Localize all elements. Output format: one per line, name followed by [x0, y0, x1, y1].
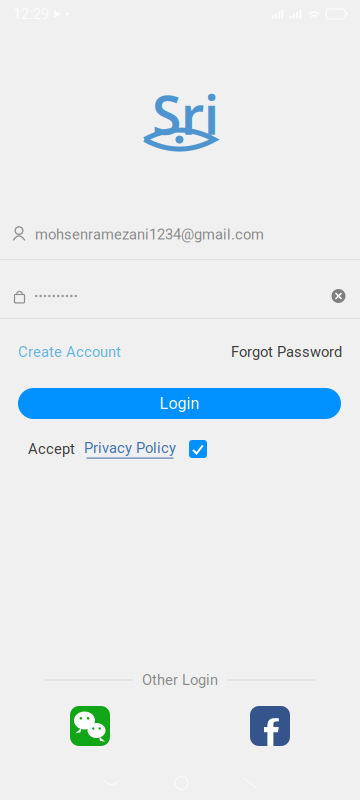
staticText: Sri	[152, 79, 219, 149]
button[interactable]: Privacy Policy	[84, 439, 176, 459]
button[interactable]: Clear password	[331, 289, 345, 303]
button[interactable]: Create Account	[18, 343, 121, 361]
button[interactable]: Accept privacy policy	[189, 440, 207, 458]
staticText: mohsenramezani1234@gmail.com	[35, 226, 264, 243]
staticText: Privacy Policy	[84, 439, 176, 457]
button[interactable]: Sign in with Facebook	[250, 706, 290, 746]
staticText: Create Account	[18, 343, 121, 361]
staticText: 12:29	[13, 5, 49, 23]
staticText: Accept	[28, 440, 75, 458]
staticText: Login	[159, 394, 199, 413]
button[interactable]: Forgot Password	[231, 343, 342, 361]
button[interactable]: Sign in with WeChat	[70, 706, 110, 746]
staticText: Forgot Password	[231, 343, 342, 361]
button[interactable]: Login	[18, 388, 341, 419]
staticText: Other Login	[142, 671, 218, 689]
